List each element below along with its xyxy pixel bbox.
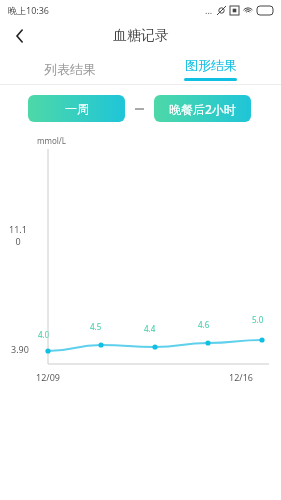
- staticText: mmol/L: [37, 135, 67, 146]
- button[interactable]: 图形结果: [140, 52, 281, 85]
- staticText: 列表结果: [44, 61, 96, 77]
- staticText: 11.10: [8, 223, 28, 247]
- button[interactable]: 一周: [28, 95, 125, 122]
- staticText: 晚餐后2小时: [169, 101, 236, 117]
- button[interactable]: Back: [8, 24, 32, 48]
- staticText: 4.6: [198, 319, 210, 330]
- staticText: 4.0: [38, 329, 50, 340]
- staticText: 图形结果: [185, 57, 237, 73]
- button[interactable]: 列表结果: [0, 52, 140, 85]
- staticText: 3.90: [11, 343, 29, 355]
- staticText: 晚上10:36: [8, 4, 50, 16]
- staticText: 12/16: [229, 371, 253, 383]
- staticText: 一周: [65, 101, 89, 116]
- staticText: 12/09: [36, 371, 60, 383]
- staticText: ...: [205, 4, 213, 16]
- staticText: 4.5: [90, 321, 102, 332]
- staticText: 5.0: [252, 314, 264, 325]
- button[interactable]: 晚餐后2小时: [154, 95, 251, 122]
- staticText: 血糖记录: [113, 27, 169, 45]
- staticText: 4.4: [144, 323, 156, 334]
